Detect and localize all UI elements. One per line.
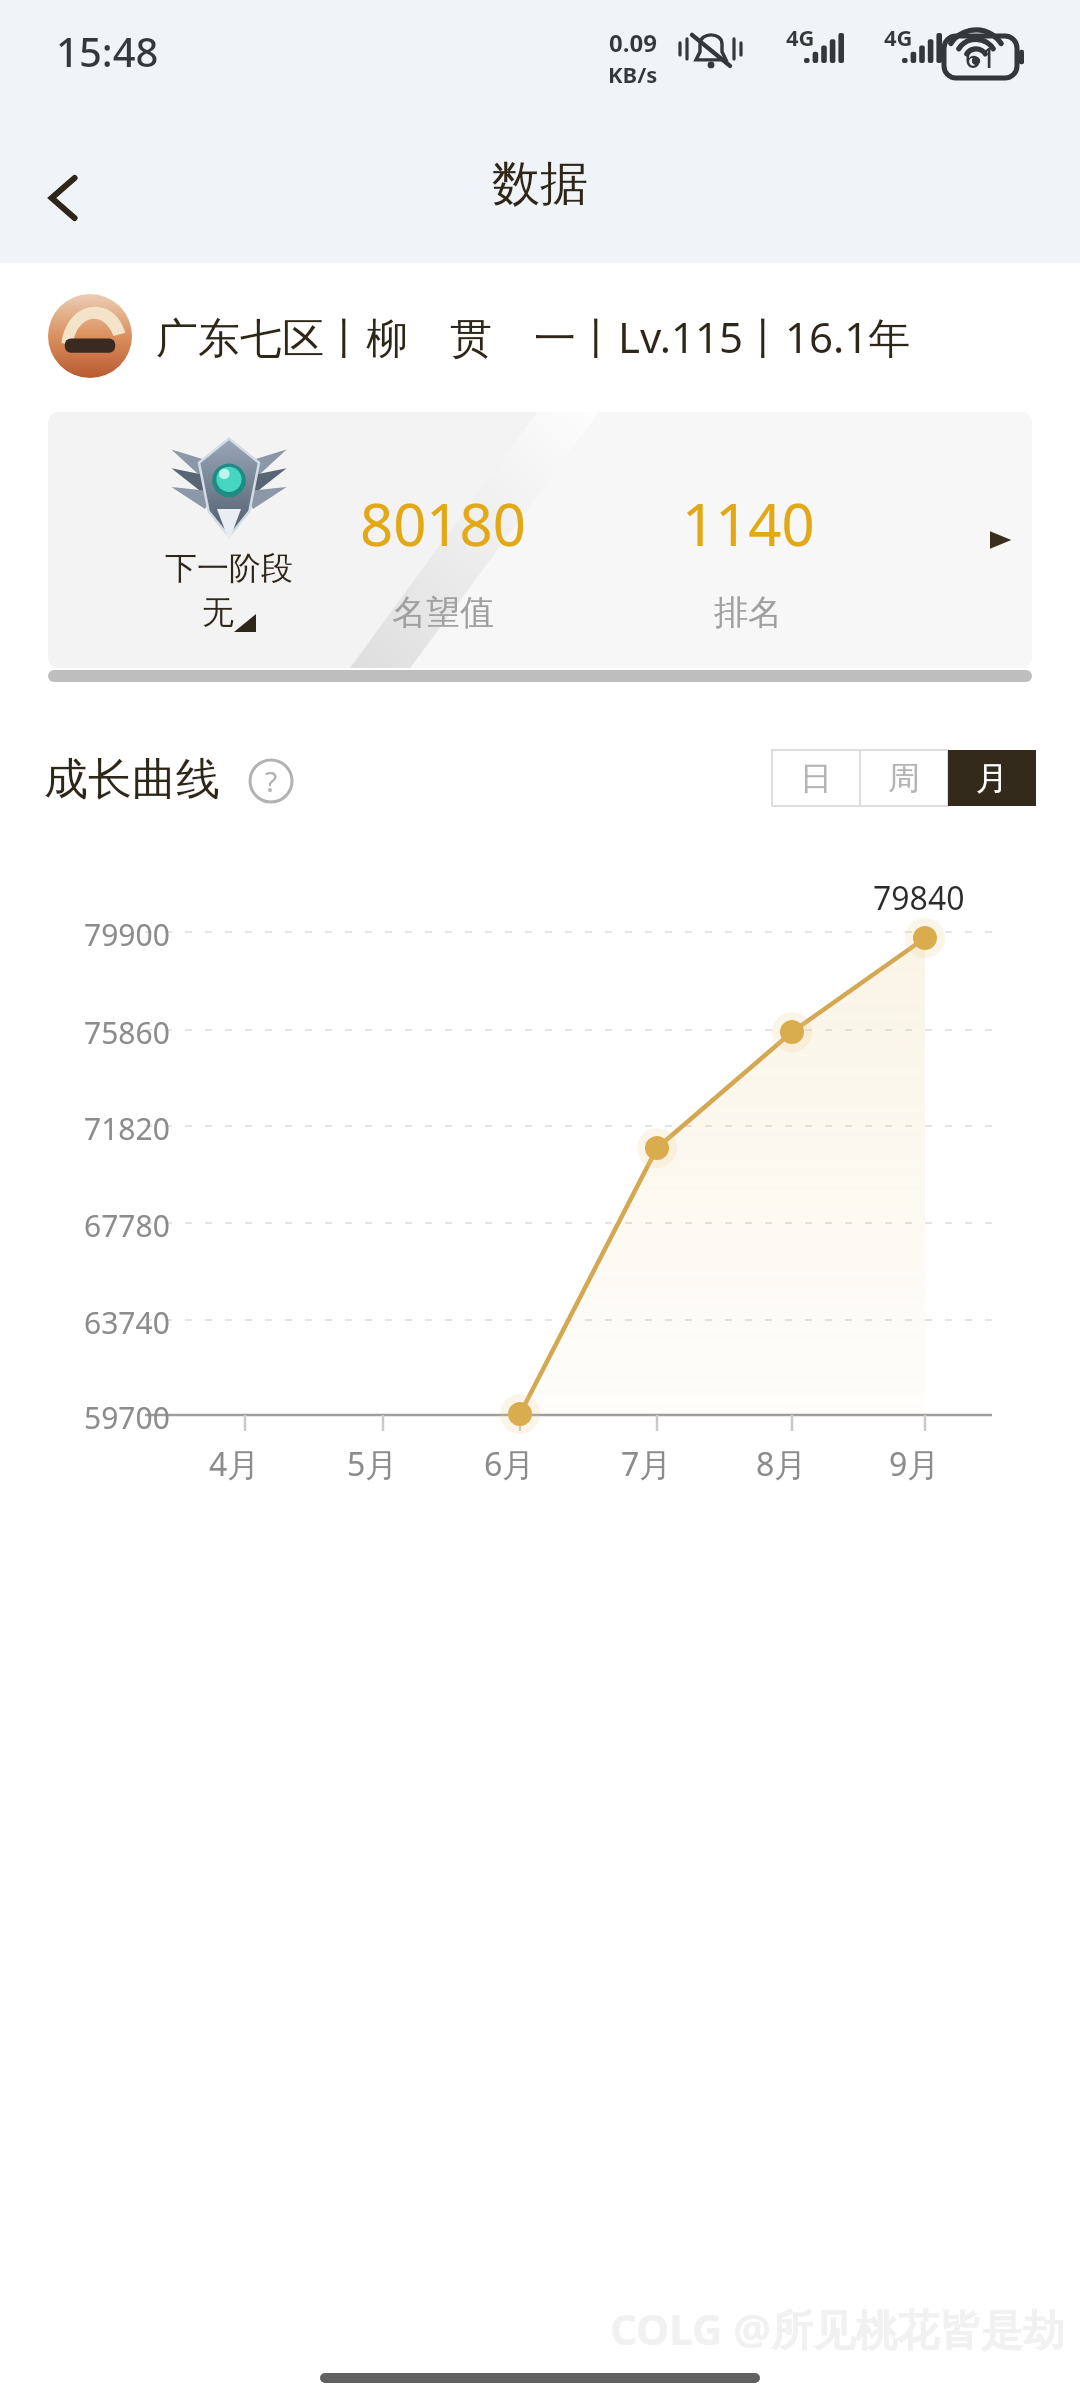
staticText: 日: [800, 758, 832, 798]
staticText: 无: [202, 592, 234, 632]
staticText: 9月: [889, 1442, 940, 1486]
staticText: 下一阶段: [165, 548, 293, 588]
staticText: 1140: [682, 484, 815, 563]
staticText: 月: [976, 758, 1008, 798]
staticText: 80180: [360, 484, 526, 563]
staticText: 7月: [621, 1442, 672, 1486]
staticText: 广东七区丨柳 贯 一丨Lv.115丨16.1年: [156, 308, 911, 365]
staticText: 名望值: [392, 591, 494, 634]
staticText: 79900: [84, 914, 170, 955]
staticText: 排名: [714, 591, 782, 634]
staticText: COLG @所见桃花皆是劫: [610, 2300, 1066, 2357]
staticText: 61: [965, 39, 996, 76]
button[interactable]: 下一阶段: [48, 412, 1032, 668]
staticText: 数据: [0, 154, 1080, 214]
button[interactable]: 日: [772, 750, 860, 806]
staticText: 79840: [873, 876, 965, 920]
button[interactable]: Back: [16, 150, 112, 246]
staticText: 8月: [756, 1442, 807, 1486]
staticText: 周: [888, 758, 920, 798]
staticText: 71820: [84, 1108, 170, 1149]
staticText: 6月: [484, 1442, 535, 1486]
staticText: 75860: [84, 1012, 170, 1053]
staticText: 59700: [84, 1397, 170, 1438]
staticText: 15:48: [56, 24, 159, 78]
button[interactable]: 广东七区丨柳 贯 一丨Lv.115丨16.1年: [0, 292, 1080, 380]
staticText: 4G: [884, 22, 913, 52]
button[interactable]: 月: [948, 750, 1036, 806]
staticText: 成长曲线: [44, 752, 220, 807]
button[interactable]: Help: [248, 758, 294, 804]
staticText: 5月: [347, 1442, 398, 1486]
staticText: 4G: [786, 22, 815, 52]
staticText: 63740: [84, 1302, 170, 1343]
staticText: 67780: [84, 1205, 170, 1246]
button[interactable]: 周: [860, 750, 948, 806]
staticText: 4月: [209, 1442, 260, 1486]
staticText: 0.09: [609, 26, 657, 59]
staticText: ?: [265, 762, 278, 800]
other: More: [990, 527, 1016, 553]
staticText: KB/s: [608, 59, 658, 89]
